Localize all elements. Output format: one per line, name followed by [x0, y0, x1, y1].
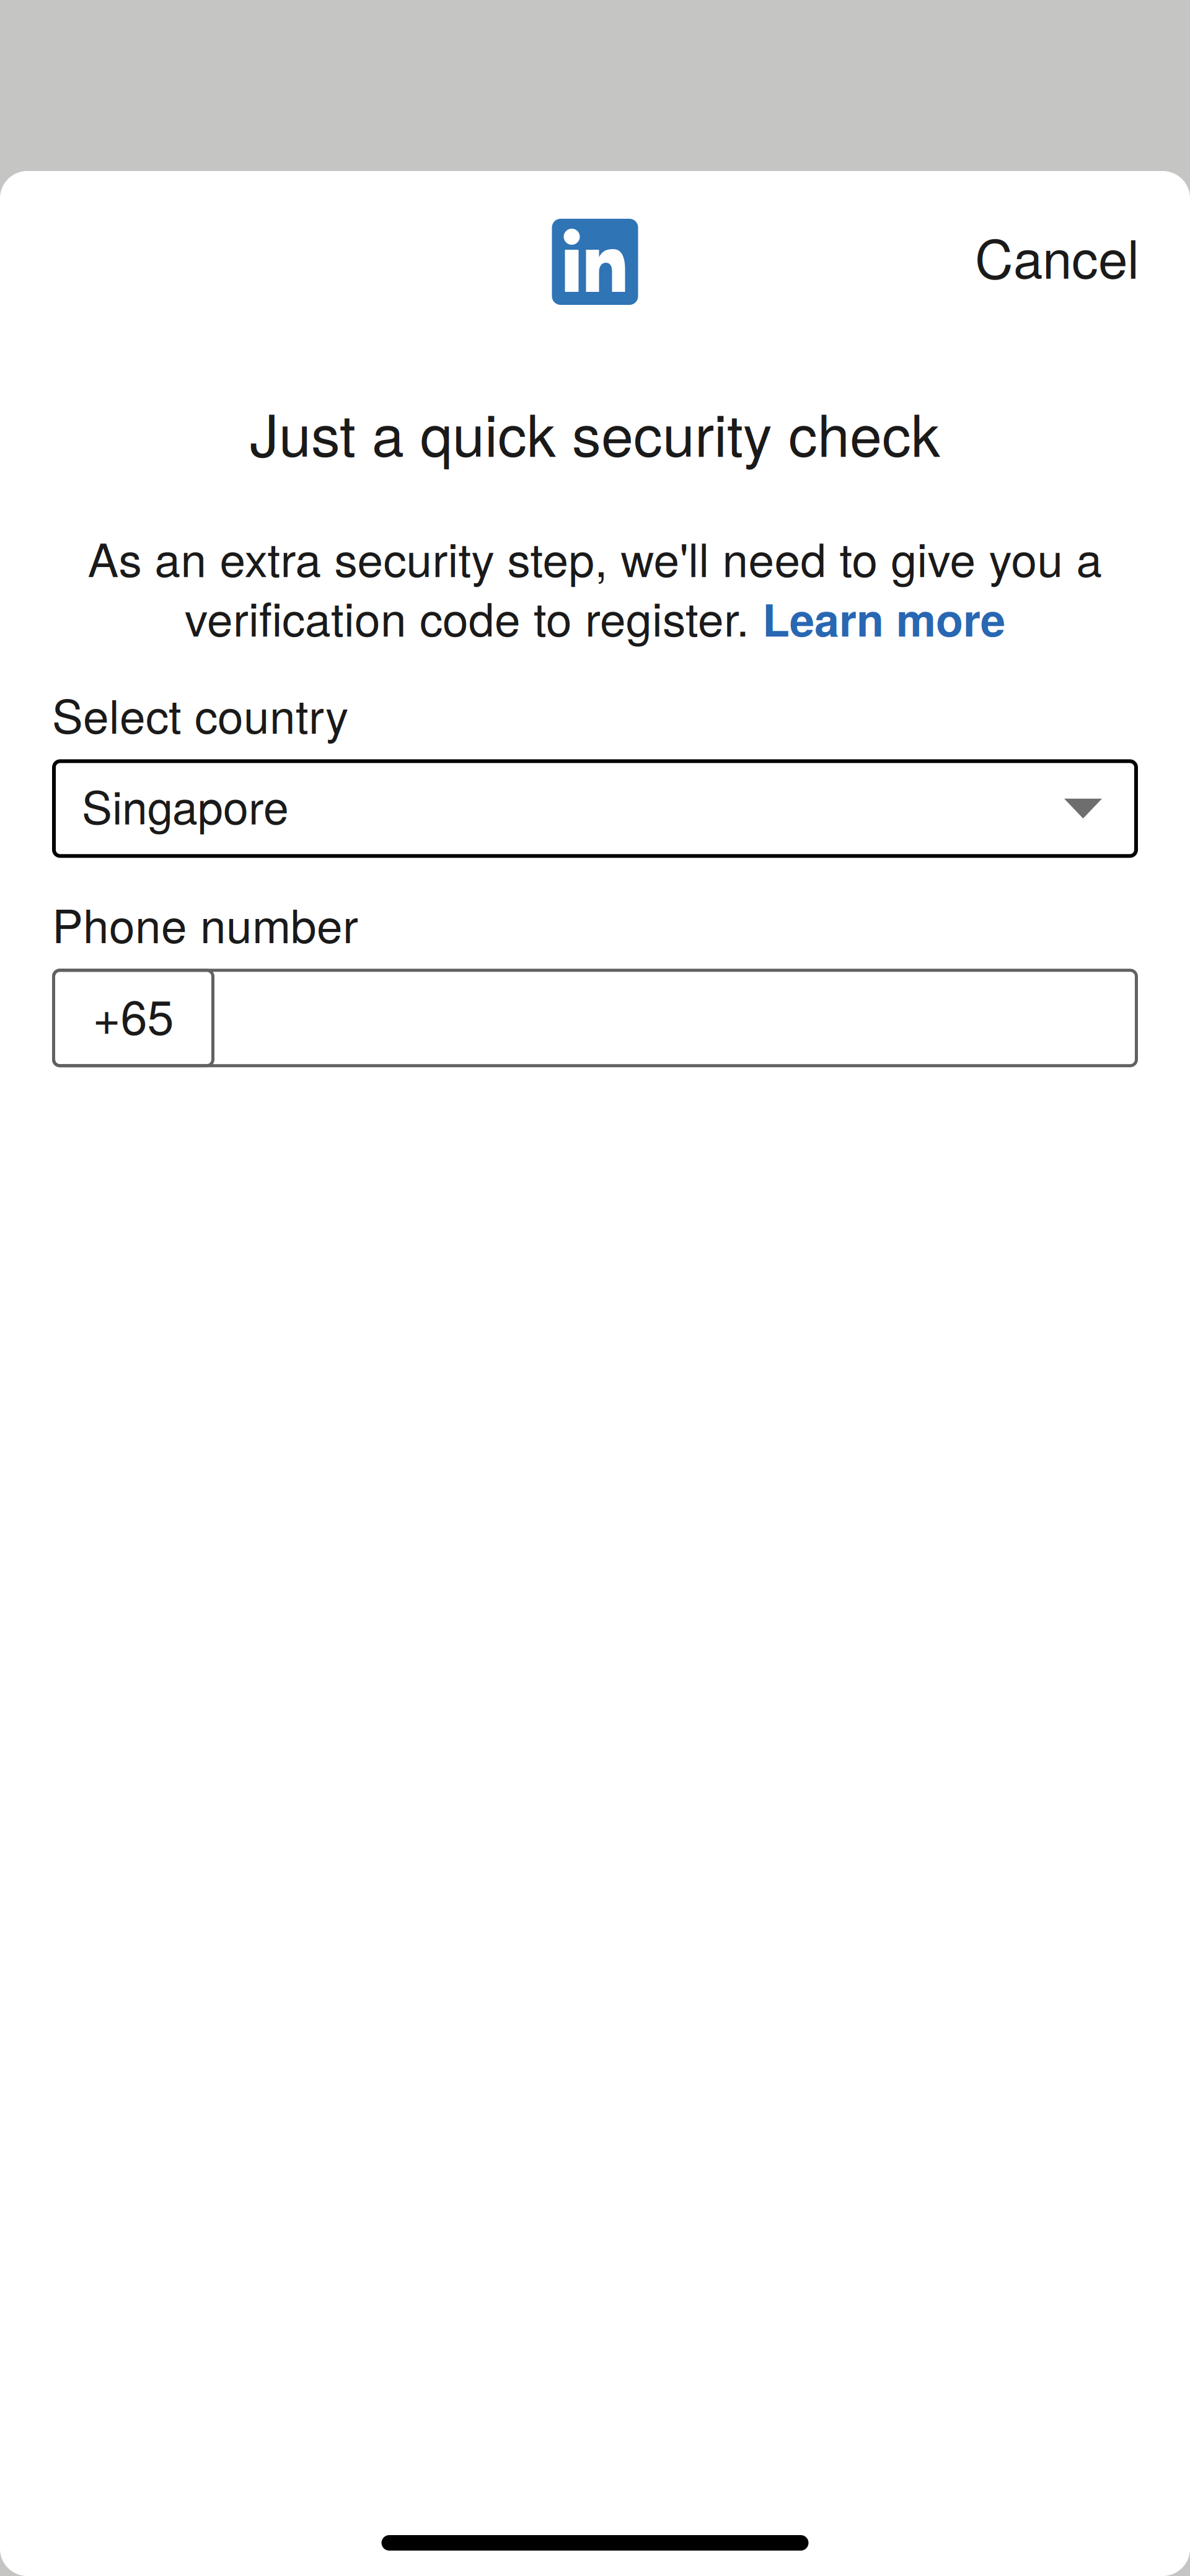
button[interactable]: Cancel: [956, 203, 1158, 309]
button[interactable]: Singapore: [52, 759, 1138, 858]
staticText: Singapore: [82, 772, 289, 837]
staticText: Phone number: [52, 890, 358, 956]
staticText: +65: [93, 980, 174, 1049]
staticText: As an extra security step, we'll need to…: [88, 524, 1102, 590]
staticText: Learn more: [762, 586, 1005, 650]
staticText: Just a quick security check: [250, 390, 940, 473]
staticText: verification code to register.: [185, 583, 749, 650]
button[interactable]: Learn more: [762, 586, 1005, 650]
staticText: Cancel: [975, 218, 1139, 294]
staticText: Select country: [52, 681, 348, 747]
